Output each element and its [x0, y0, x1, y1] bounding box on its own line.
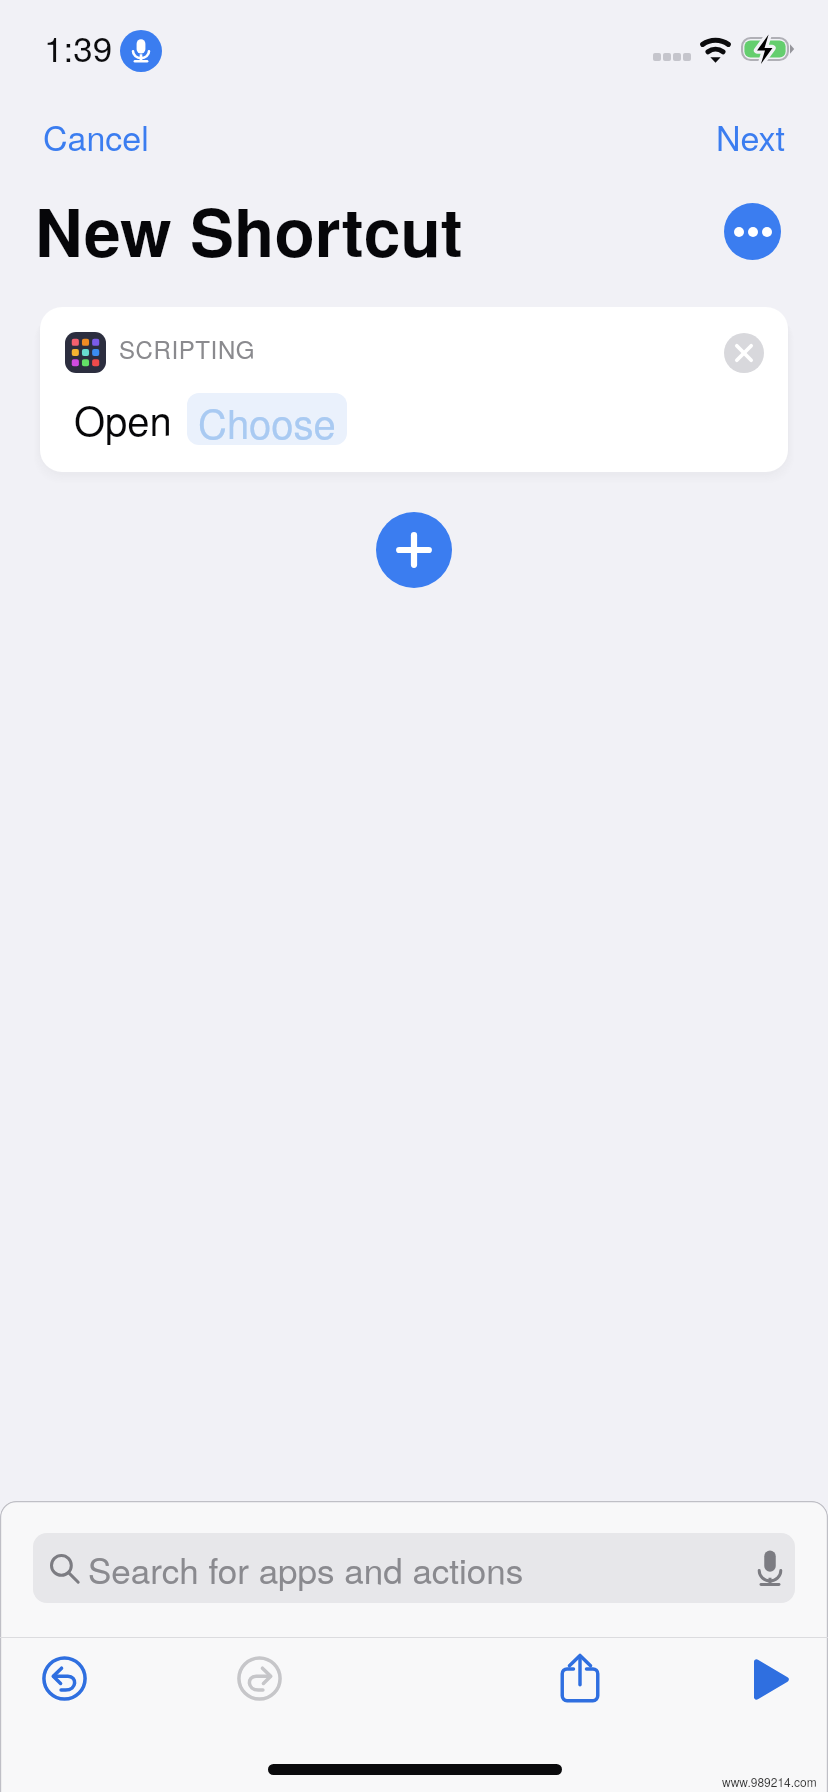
staticText: Next	[716, 112, 786, 161]
button[interactable]: Share	[556, 1651, 604, 1703]
button[interactable]: Choose	[187, 393, 347, 445]
staticText: www.989214.com	[722, 1773, 817, 1790]
button[interactable]: Undo	[40, 1654, 89, 1703]
button[interactable]: Remove action	[724, 333, 764, 373]
staticText: Choose	[198, 393, 336, 445]
button[interactable]: Run shortcut	[751, 1658, 791, 1701]
staticText: New Shortcut	[35, 183, 463, 278]
staticText: 1:39	[44, 22, 113, 72]
button[interactable]: Cancel	[36, 104, 156, 169]
button[interactable]: Redo	[235, 1654, 284, 1703]
staticText: SCRIPTING	[119, 331, 256, 365]
button[interactable]: Search for apps and actions	[33, 1533, 795, 1603]
button[interactable]: Voice search	[747, 1545, 793, 1591]
button[interactable]: More options	[724, 203, 781, 260]
staticText: Open	[74, 390, 172, 447]
staticText: Search for apps and actions	[88, 1544, 524, 1594]
button[interactable]: SCRIPTING	[40, 307, 788, 472]
button[interactable]: Add action	[376, 512, 452, 588]
button[interactable]: Next	[709, 104, 793, 169]
staticText: Cancel	[43, 112, 149, 161]
